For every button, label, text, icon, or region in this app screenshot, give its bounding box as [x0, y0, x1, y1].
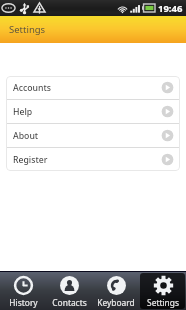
button[interactable]: About: [6, 124, 180, 147]
staticText: History: [9, 297, 38, 308]
staticText: Accounts: [13, 82, 161, 94]
staticText: Settings: [9, 23, 46, 36]
staticText: Help: [13, 106, 161, 118]
staticText: Settings: [147, 297, 179, 308]
button[interactable]: History: [1, 273, 45, 309]
staticText: Register: [13, 154, 161, 166]
button[interactable]: Register: [6, 148, 180, 171]
staticText: Keyboard: [97, 297, 135, 308]
button[interactable]: Settings: [140, 273, 185, 309]
button[interactable]: Keyboard: [93, 273, 138, 309]
staticText: 19:46: [158, 2, 183, 15]
button[interactable]: Contacts: [47, 273, 91, 309]
staticText: Contacts: [52, 297, 87, 308]
button[interactable]: Accounts: [6, 76, 180, 99]
button[interactable]: Help: [6, 100, 180, 123]
staticText: About: [13, 130, 161, 142]
